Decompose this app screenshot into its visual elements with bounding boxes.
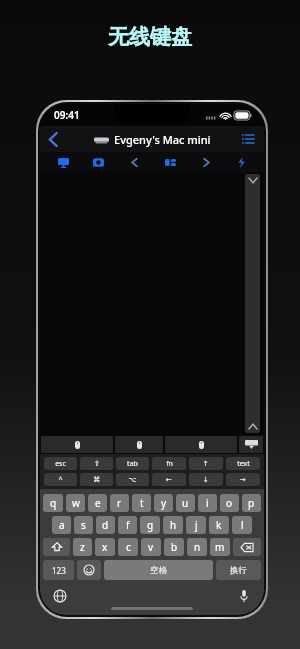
button[interactable]: Change keyboard xyxy=(49,585,71,607)
staticText: z xyxy=(80,540,85,554)
staticText: u xyxy=(182,496,189,510)
staticText: r xyxy=(117,496,122,510)
staticText: n xyxy=(194,540,201,554)
button[interactable]: m xyxy=(210,538,230,556)
staticText: ↓ xyxy=(203,476,209,484)
staticText: i xyxy=(206,496,209,510)
button[interactable]: n xyxy=(187,538,207,556)
staticText: v xyxy=(148,540,154,554)
button[interactable]: e xyxy=(88,494,107,512)
button[interactable]: l xyxy=(232,516,252,534)
staticText: x xyxy=(102,540,108,554)
staticText: h xyxy=(170,518,177,532)
staticText: 123 xyxy=(52,565,66,576)
button[interactable]: Shift xyxy=(43,538,70,556)
staticText: e xyxy=(95,496,101,510)
staticText: 换行 xyxy=(230,565,247,576)
button[interactable]: ⌘ xyxy=(80,473,113,486)
staticText: ⌥ xyxy=(128,476,137,484)
button[interactable]: h xyxy=(163,516,183,534)
button[interactable]: List xyxy=(236,127,260,151)
button[interactable]: z xyxy=(73,538,92,556)
staticText: 无线键盘 xyxy=(108,24,192,50)
button[interactable]: 空格 xyxy=(104,560,213,580)
button[interactable]: r xyxy=(110,494,129,512)
staticText: q xyxy=(50,496,57,510)
staticText: a xyxy=(59,518,65,532)
staticText: 09:41 xyxy=(54,108,80,122)
staticText: l xyxy=(241,518,244,532)
button[interactable]: Screenshot xyxy=(85,152,111,172)
staticText: b xyxy=(171,540,178,554)
button[interactable]: y xyxy=(154,494,173,512)
button[interactable]: v xyxy=(141,538,161,556)
button[interactable]: Emoji xyxy=(77,560,101,580)
button[interactable]: k xyxy=(209,516,229,534)
button[interactable]: esc xyxy=(44,457,77,470)
staticText: ↑ xyxy=(203,460,209,468)
staticText: ⌘ xyxy=(93,476,100,484)
staticText: j xyxy=(195,518,198,532)
button[interactable]: Mouse button 2 xyxy=(115,436,163,453)
button[interactable]: ^ xyxy=(44,473,77,486)
button[interactable]: 换行 xyxy=(216,560,261,580)
staticText: → xyxy=(240,476,246,484)
button[interactable]: u xyxy=(176,494,195,512)
button[interactable]: a xyxy=(52,516,71,534)
button[interactable]: o xyxy=(220,494,239,512)
button[interactable]: t xyxy=(132,494,151,512)
staticText: ← xyxy=(166,476,172,484)
button[interactable]: → xyxy=(226,473,260,486)
staticText: p xyxy=(248,496,255,510)
button[interactable]: c xyxy=(118,538,138,556)
button[interactable]: Next xyxy=(193,152,219,172)
button[interactable]: ⌥ xyxy=(116,473,149,486)
button[interactable]: f xyxy=(118,516,137,534)
button[interactable]: i xyxy=(198,494,217,512)
staticText: o xyxy=(226,496,233,510)
button[interactable]: Backspace xyxy=(233,538,261,556)
button[interactable]: tab xyxy=(116,457,149,470)
button[interactable]: Split xyxy=(157,152,183,172)
staticText: w xyxy=(72,496,80,510)
button[interactable]: Scroll xyxy=(245,174,260,433)
staticText: m xyxy=(215,540,225,554)
staticText: ⇧ xyxy=(94,460,100,468)
button[interactable]: ↑ xyxy=(189,457,223,470)
button[interactable]: ← xyxy=(152,473,186,486)
button[interactable]: 123 xyxy=(43,560,74,580)
button[interactable]: s xyxy=(74,516,93,534)
button[interactable]: Back xyxy=(40,126,66,152)
button[interactable]: b xyxy=(164,538,184,556)
button[interactable]: w xyxy=(66,494,85,512)
button[interactable]: Previous xyxy=(121,152,147,172)
button[interactable]: j xyxy=(186,516,206,534)
button[interactable]: Dictate xyxy=(233,585,255,607)
staticText: g xyxy=(147,518,154,532)
button[interactable]: ⇧ xyxy=(80,457,113,470)
button[interactable]: Power xyxy=(228,152,254,172)
staticText: s xyxy=(81,518,86,532)
staticText: y xyxy=(161,496,167,510)
button[interactable]: g xyxy=(140,516,160,534)
button[interactable]: d xyxy=(96,516,115,534)
staticText: esc xyxy=(55,459,66,469)
button[interactable]: text xyxy=(226,457,260,470)
button[interactable]: Hide keyboard xyxy=(239,436,263,453)
button[interactable]: Mouse button 1 xyxy=(41,436,113,453)
button[interactable]: x xyxy=(95,538,115,556)
staticText: 无线键盘 xyxy=(108,24,192,50)
button[interactable]: Mouse button 3 xyxy=(165,436,237,453)
staticText: k xyxy=(216,518,222,532)
staticText: text xyxy=(237,459,250,469)
button[interactable]: Display xyxy=(50,152,76,172)
staticText: Evgeny's Mac mini xyxy=(114,132,211,147)
button[interactable]: p xyxy=(242,494,261,512)
button[interactable]: q xyxy=(43,494,63,512)
staticText: fn xyxy=(166,459,173,469)
button[interactable]: fn xyxy=(152,457,186,470)
staticText: 空格 xyxy=(150,565,167,576)
button[interactable]: ↓ xyxy=(189,473,223,486)
staticText: c xyxy=(126,540,131,554)
